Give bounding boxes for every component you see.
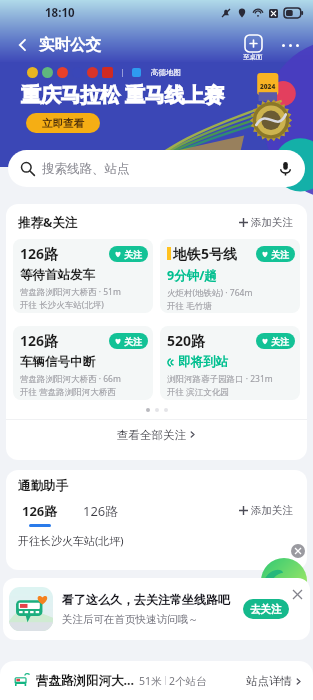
staticText: 车辆信号中断 — [20, 354, 95, 370]
button[interactable]: 126路 — [12, 502, 68, 527]
staticText: 关注 — [271, 336, 289, 347]
staticText: 添加关注 — [251, 504, 293, 517]
staticText: 添加关注 — [251, 216, 293, 229]
staticText: 高德地图 — [151, 68, 181, 77]
staticText: 营盘路浏阳河大桥西 · 66m — [20, 373, 121, 385]
staticText: 126路 — [20, 331, 59, 350]
button[interactable]: 126路 — [13, 239, 153, 313]
staticText: 营盘路浏阳河大... — [36, 672, 135, 689]
button[interactable]: 126路 — [73, 502, 129, 527]
staticText: 126路 — [20, 244, 59, 263]
button[interactable]: 添加关注 — [235, 212, 297, 233]
button[interactable]: 高德地图 — [0, 62, 313, 167]
button[interactable]: Add to home screen — [243, 35, 263, 61]
staticText: 火炬村(地铁站) · 764m — [167, 287, 253, 299]
staticText: 低碳 — [272, 585, 296, 600]
staticText: 站点详情 — [246, 674, 292, 688]
staticText: 看了这么久，去关注常坐线路吧 — [62, 592, 230, 607]
staticText: 开往 长沙火车站(北坪) — [20, 299, 104, 311]
button[interactable]: 关注 — [256, 246, 295, 262]
button[interactable]: 查看全部关注 — [6, 420, 307, 449]
button[interactable]: 看了这么久，去关注常坐线路吧 — [3, 578, 310, 640]
button[interactable]: 126路 — [13, 326, 153, 400]
button[interactable]: 搜索线路、站点 — [8, 150, 305, 187]
staticText: 18:10 — [45, 5, 75, 21]
staticText: 即将到站 — [178, 354, 228, 370]
staticText: 实时公交 — [39, 35, 101, 55]
other: Voice search — [278, 161, 293, 176]
staticText: 搜索线路、站点 — [42, 161, 130, 177]
button[interactable]: 关注 — [109, 333, 148, 349]
staticText: 关注 — [271, 249, 289, 260]
staticText: 立即查看 — [42, 117, 84, 130]
staticText: 2个站台 — [169, 674, 207, 688]
button[interactable]: Close — [291, 544, 305, 558]
staticText: 51米 — [139, 674, 162, 688]
staticText: 2024 — [260, 82, 276, 91]
staticText: 关注 — [124, 249, 142, 260]
button[interactable]: Low carbon travel — [261, 558, 307, 604]
staticText: 通勤助手 — [18, 478, 68, 494]
staticText: 关注后可在首页快速访问哦～ — [62, 613, 199, 626]
staticText: 126路 — [22, 502, 58, 520]
staticText: 去关注 — [250, 603, 282, 616]
button[interactable]: 520路 — [160, 326, 300, 400]
staticText: 至桌面 — [243, 53, 263, 61]
button[interactable]: More options — [278, 40, 303, 51]
staticText: 查看全部关注 — [117, 428, 186, 442]
button[interactable]: 添加关注 — [235, 500, 297, 521]
staticText: 关注 — [124, 336, 142, 347]
staticText: 重庆马拉松 重马线上赛 — [21, 81, 224, 108]
staticText: 营盘路浏阳河大桥西 · 51m — [20, 286, 121, 298]
button[interactable]: 地铁5号线 — [160, 239, 300, 313]
button[interactable]: 去关注 — [243, 599, 289, 619]
staticText: 开往 营盘路浏阳河大桥西 — [20, 386, 116, 398]
staticText: 126路 — [83, 502, 119, 520]
button[interactable]: Dismiss — [289, 586, 305, 602]
staticText: 开往 滨江文化园 — [167, 386, 229, 398]
staticText: 地铁5号线 — [173, 244, 238, 263]
staticText: 浏阳河路蓉子园路口 · 231m — [167, 373, 273, 385]
button[interactable]: 站点详情 — [246, 674, 303, 688]
staticText: 开往长沙火车站(北坪) — [18, 533, 124, 548]
staticText: 等待首站发车 — [20, 267, 95, 283]
button[interactable]: 关注 — [256, 333, 295, 349]
staticText: 9分钟/趟 — [167, 267, 217, 284]
staticText: 推荐&关注 — [18, 214, 78, 231]
button[interactable]: 关注 — [109, 246, 148, 262]
staticText: 开往 毛竹塘 — [167, 300, 212, 312]
button[interactable]: Back — [13, 35, 101, 55]
button[interactable]: 立即查看 — [26, 113, 100, 133]
staticText: 520路 — [167, 331, 206, 350]
